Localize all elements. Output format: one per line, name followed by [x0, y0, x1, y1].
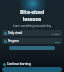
- staticText: 12 days: [51, 32, 60, 35]
- staticText: Learn something new each day: [0, 24, 64, 28]
- button[interactable]: Daily streak: [2, 30, 62, 36]
- button[interactable]: Continue learning: [3, 62, 61, 66]
- button[interactable]: Progress: [2, 38, 62, 44]
- staticText: 68%: [55, 40, 60, 43]
- button[interactable]: [2, 67, 62, 72]
- staticText: Bite-sized: [0, 9, 64, 16]
- button[interactable]: [9, 46, 55, 50]
- staticText: Daily streak: [8, 31, 23, 35]
- staticText: Progress: [8, 39, 19, 43]
- staticText: Continue learning: [7, 62, 31, 66]
- staticText: lessons: [0, 16, 64, 23]
